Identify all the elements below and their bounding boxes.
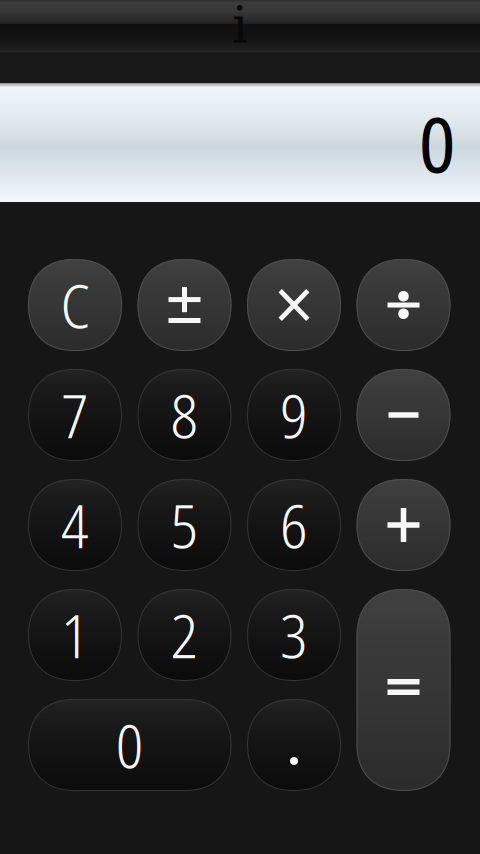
staticText: 2: [170, 594, 198, 676]
staticText: 6: [280, 484, 308, 566]
staticText: 0: [116, 704, 144, 786]
button[interactable]: 5: [137, 479, 231, 571]
button[interactable]: 7: [28, 369, 122, 461]
staticText: 1: [61, 594, 89, 676]
button[interactable]: Divide: [356, 259, 450, 351]
button[interactable]: Plus: [356, 479, 450, 571]
staticText: C: [60, 264, 89, 346]
button[interactable]: Info: [208, 0, 272, 50]
staticText: 9: [280, 374, 308, 456]
button[interactable]: 1: [28, 589, 122, 681]
staticText: 0: [419, 90, 456, 195]
staticText: i: [232, 0, 248, 54]
button[interactable]: Minus: [356, 369, 450, 461]
staticText: 8: [170, 374, 198, 456]
button[interactable]: Decimal point: [247, 699, 341, 791]
staticText: 4: [61, 484, 89, 566]
button[interactable]: 9: [247, 369, 341, 461]
button[interactable]: C: [28, 259, 122, 351]
staticText: 3: [280, 594, 308, 676]
button[interactable]: 0: [28, 699, 231, 791]
button[interactable]: 6: [247, 479, 341, 571]
staticText: 7: [61, 374, 89, 456]
button[interactable]: 8: [137, 369, 231, 461]
button[interactable]: Multiply: [247, 259, 341, 351]
button[interactable]: Equals: [356, 589, 450, 791]
button[interactable]: 2: [137, 589, 231, 681]
button[interactable]: 3: [247, 589, 341, 681]
button[interactable]: Plus minus: [137, 259, 231, 351]
staticText: 5: [170, 484, 198, 566]
button[interactable]: 4: [28, 479, 122, 571]
